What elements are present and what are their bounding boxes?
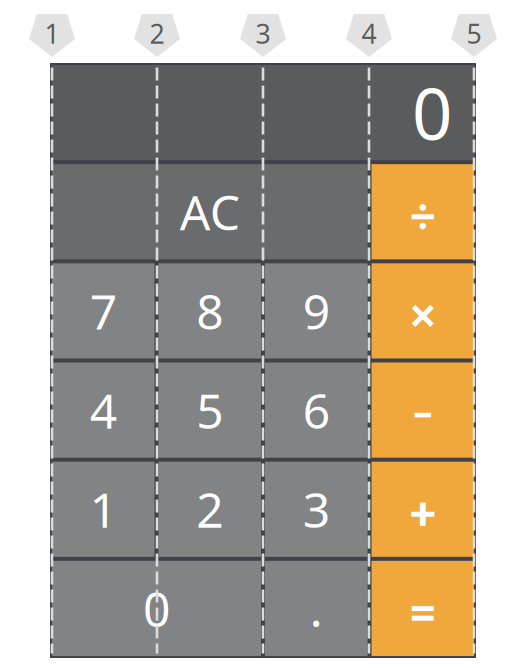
staticText: 1: [90, 477, 117, 541]
staticText: AC: [180, 180, 240, 244]
button[interactable]: Divide: [371, 164, 474, 259]
staticText: .: [310, 576, 323, 640]
staticText: 0: [412, 66, 452, 159]
button[interactable]: 3: [265, 462, 367, 557]
staticText: 3: [255, 16, 270, 51]
button[interactable]: 8: [158, 263, 261, 358]
staticText: 8: [196, 279, 223, 343]
staticText: 3: [303, 477, 330, 541]
button[interactable]: Multiply: [371, 263, 474, 358]
staticText: 2: [149, 16, 164, 51]
button[interactable]: 9: [265, 263, 367, 358]
button[interactable]: 4: [52, 362, 154, 458]
button[interactable]: 7: [52, 263, 154, 358]
staticText: 9: [303, 279, 330, 343]
staticText: 4: [90, 378, 117, 442]
button[interactable]: .: [265, 561, 367, 656]
button[interactable]: 2: [158, 462, 261, 557]
button[interactable]: 1: [52, 462, 154, 557]
button[interactable]: 0: [52, 561, 261, 656]
staticText: 1: [44, 16, 59, 51]
staticText: 6: [303, 378, 330, 442]
button[interactable]: Equals: [371, 561, 474, 656]
staticText: 4: [361, 16, 376, 51]
button[interactable]: 5: [158, 362, 261, 458]
staticText: 0: [143, 576, 170, 640]
staticText: 2: [196, 477, 223, 541]
button[interactable]: AC: [52, 164, 367, 259]
button[interactable]: 6: [265, 362, 367, 458]
button[interactable]: 0: [52, 65, 474, 160]
staticText: 5: [196, 378, 223, 442]
staticText: 7: [90, 279, 117, 343]
staticText: 5: [466, 16, 481, 51]
button[interactable]: Add: [371, 462, 474, 557]
button[interactable]: Subtract: [371, 362, 474, 458]
